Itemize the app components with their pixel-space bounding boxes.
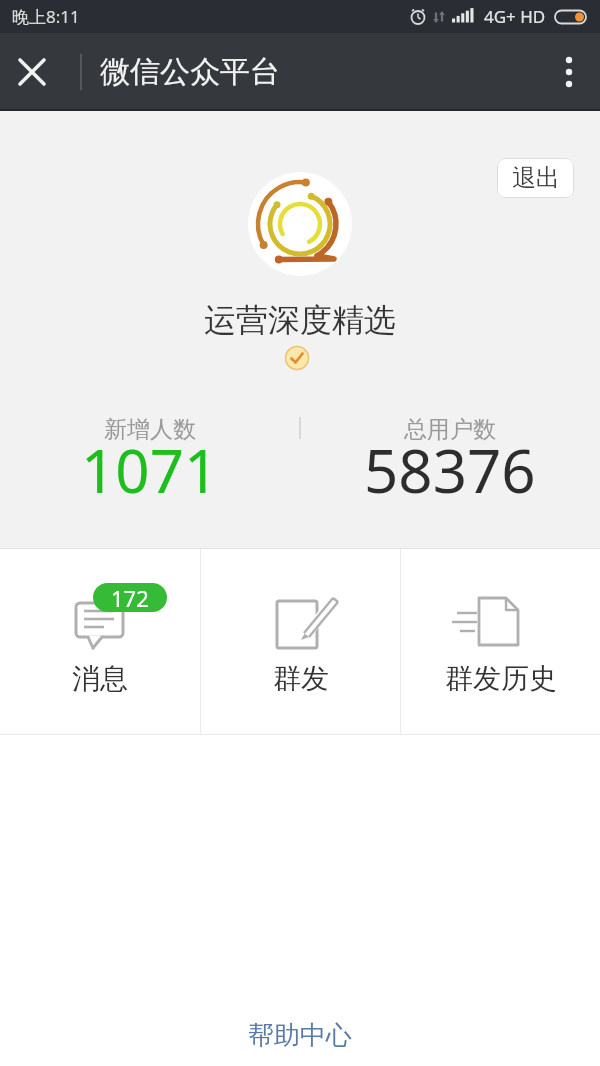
staticText: 58376 bbox=[364, 429, 536, 511]
staticText: 群发历史 bbox=[445, 661, 557, 696]
button[interactable]: 退出 bbox=[497, 158, 574, 198]
button[interactable] bbox=[0, 33, 64, 111]
staticText: 总用户数 bbox=[404, 415, 496, 444]
staticText: 帮助中心 bbox=[248, 1019, 352, 1052]
staticText: 群发 bbox=[273, 661, 329, 696]
staticText: 172 bbox=[111, 583, 149, 612]
button[interactable]: 172 bbox=[0, 549, 200, 734]
staticText: 消息 bbox=[72, 661, 128, 696]
staticText: 微信公众平台 bbox=[100, 53, 280, 91]
staticText: 新增人数 bbox=[104, 415, 196, 444]
staticText: 运营深度精选 bbox=[204, 300, 396, 340]
staticText: 晚上8:11 bbox=[12, 5, 80, 28]
button[interactable]: 群发历史 bbox=[401, 549, 600, 734]
button[interactable] bbox=[538, 33, 600, 111]
staticText: 退出 bbox=[512, 163, 560, 193]
staticText: 1071 bbox=[81, 429, 219, 511]
button[interactable]: 帮助中心 bbox=[242, 1013, 358, 1058]
button[interactable]: 群发 bbox=[201, 549, 400, 734]
staticText: 4G+ HD bbox=[484, 5, 546, 28]
